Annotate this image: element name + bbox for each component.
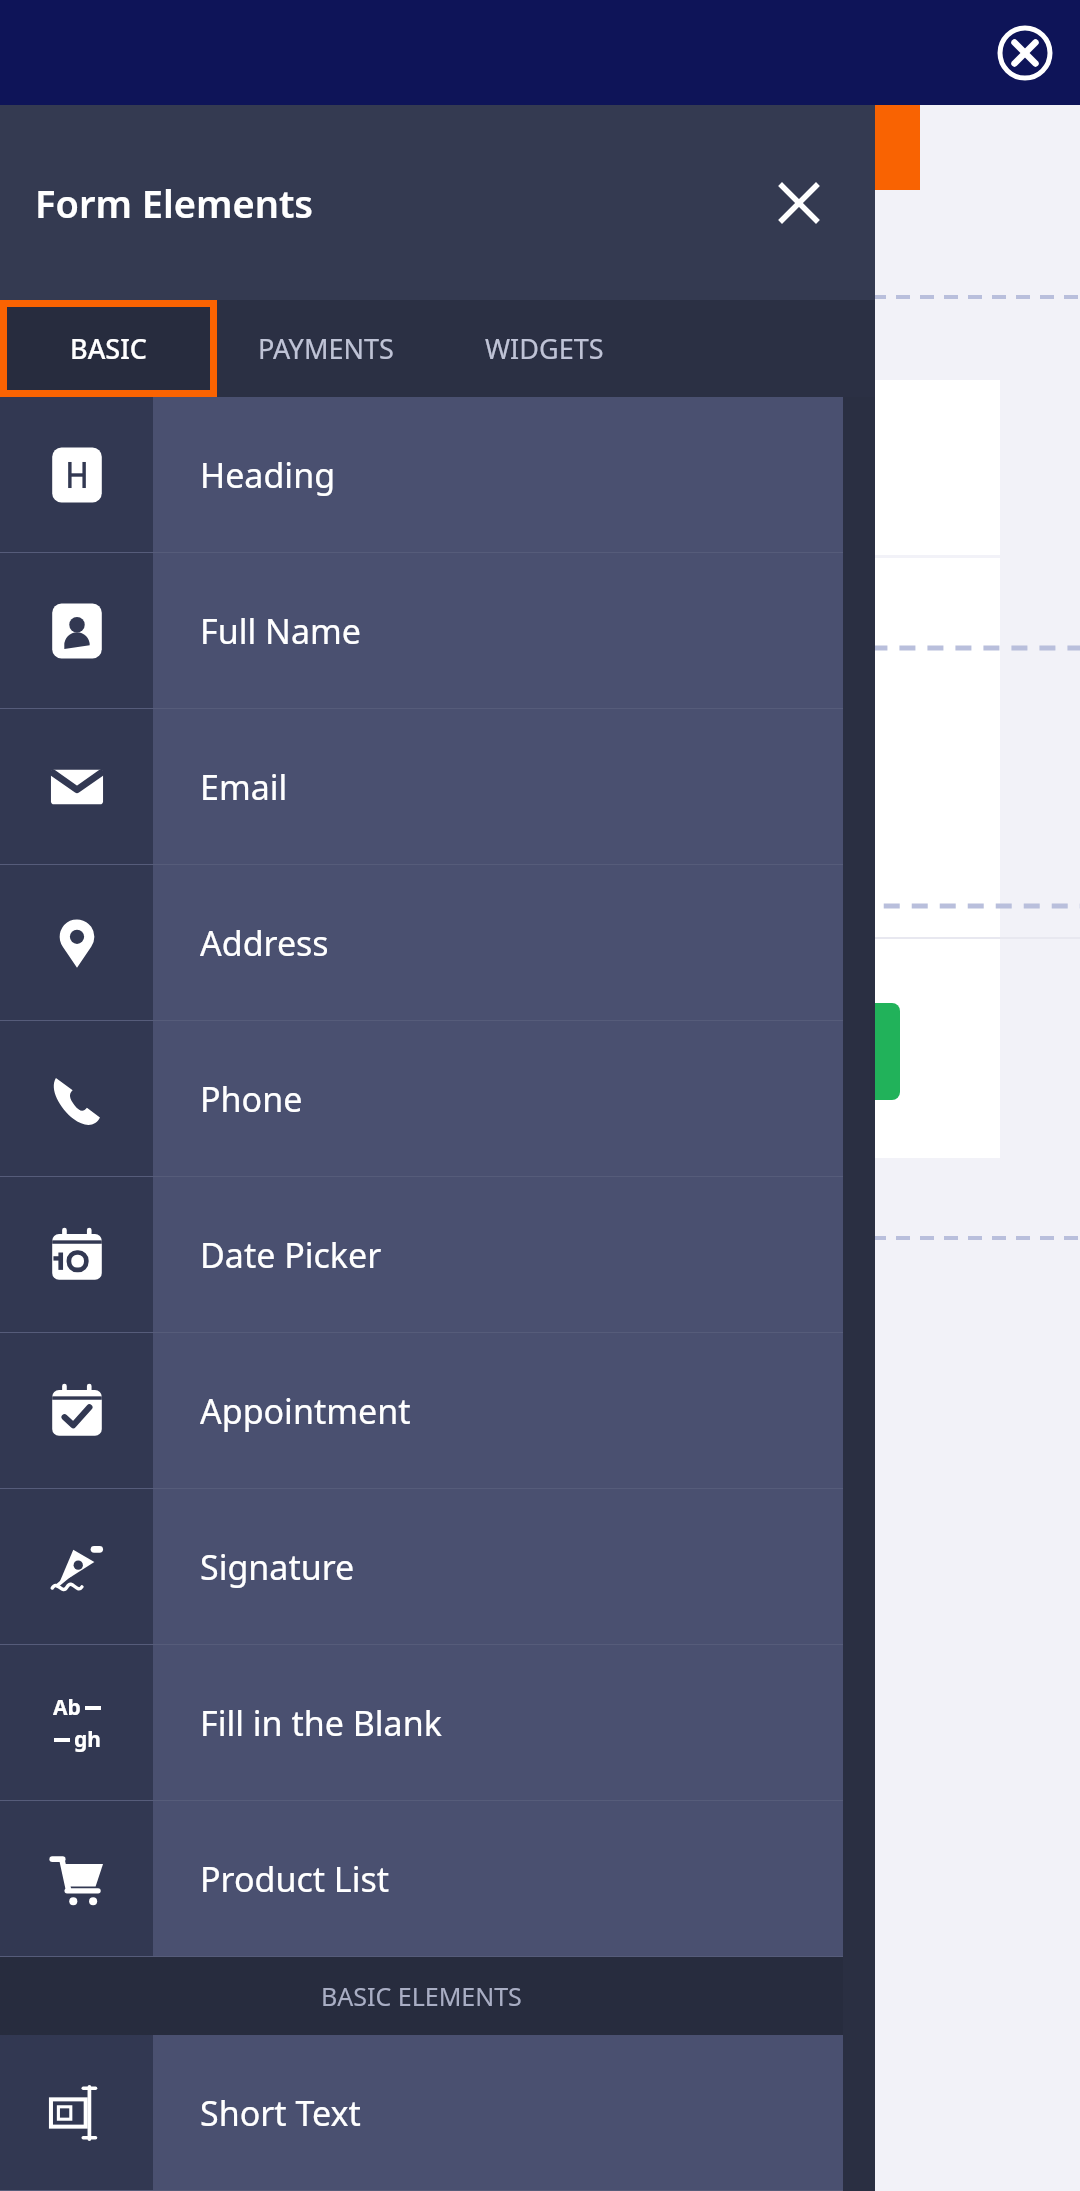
staticText: Form Elements [35,177,314,229]
button[interactable]: Signature [0,1489,843,1644]
button[interactable]: Close form elements [771,175,827,231]
staticText: Fill in the Blank [200,1700,442,1746]
button[interactable]: BASIC [7,307,210,390]
staticText: PAYMENTS [258,330,394,367]
button[interactable]: Product List [0,1801,843,1956]
button[interactable]: Heading [0,397,843,552]
button[interactable]: Close preview [997,25,1053,81]
button[interactable]: Short Text [0,2035,843,2190]
button[interactable]: Full Name [0,553,843,708]
staticText: Product List [200,1856,390,1902]
staticText: Appointment [200,1388,411,1434]
staticText: Heading [200,452,336,498]
button[interactable]: Ab [0,1645,843,1800]
button[interactable]: WIDGETS [435,300,653,397]
staticText: WIDGETS [485,330,604,367]
button[interactable]: Email [0,709,843,864]
staticText: BASIC ELEMENTS [321,1979,522,2013]
button[interactable]: Date Picker [0,1177,843,1332]
staticText: Full Name [200,608,361,654]
staticText: Phone [200,1076,303,1122]
staticText: Short Text [200,2090,361,2136]
staticText: Date Picker [200,1232,382,1278]
button[interactable]: Address [0,865,843,1020]
button[interactable]: PAYMENTS [217,300,435,397]
staticText: BASIC [70,330,147,367]
button[interactable]: Appointment [0,1333,843,1488]
button[interactable]: PUBLISH [620,105,920,190]
staticText: Address [200,920,329,966]
staticText: Signature [200,1544,355,1590]
staticText: Ab [53,1693,81,1722]
staticText: Email [200,764,288,810]
button[interactable] [600,1003,900,1100]
button[interactable]: Phone [0,1021,843,1176]
staticText: gh [74,1725,101,1754]
